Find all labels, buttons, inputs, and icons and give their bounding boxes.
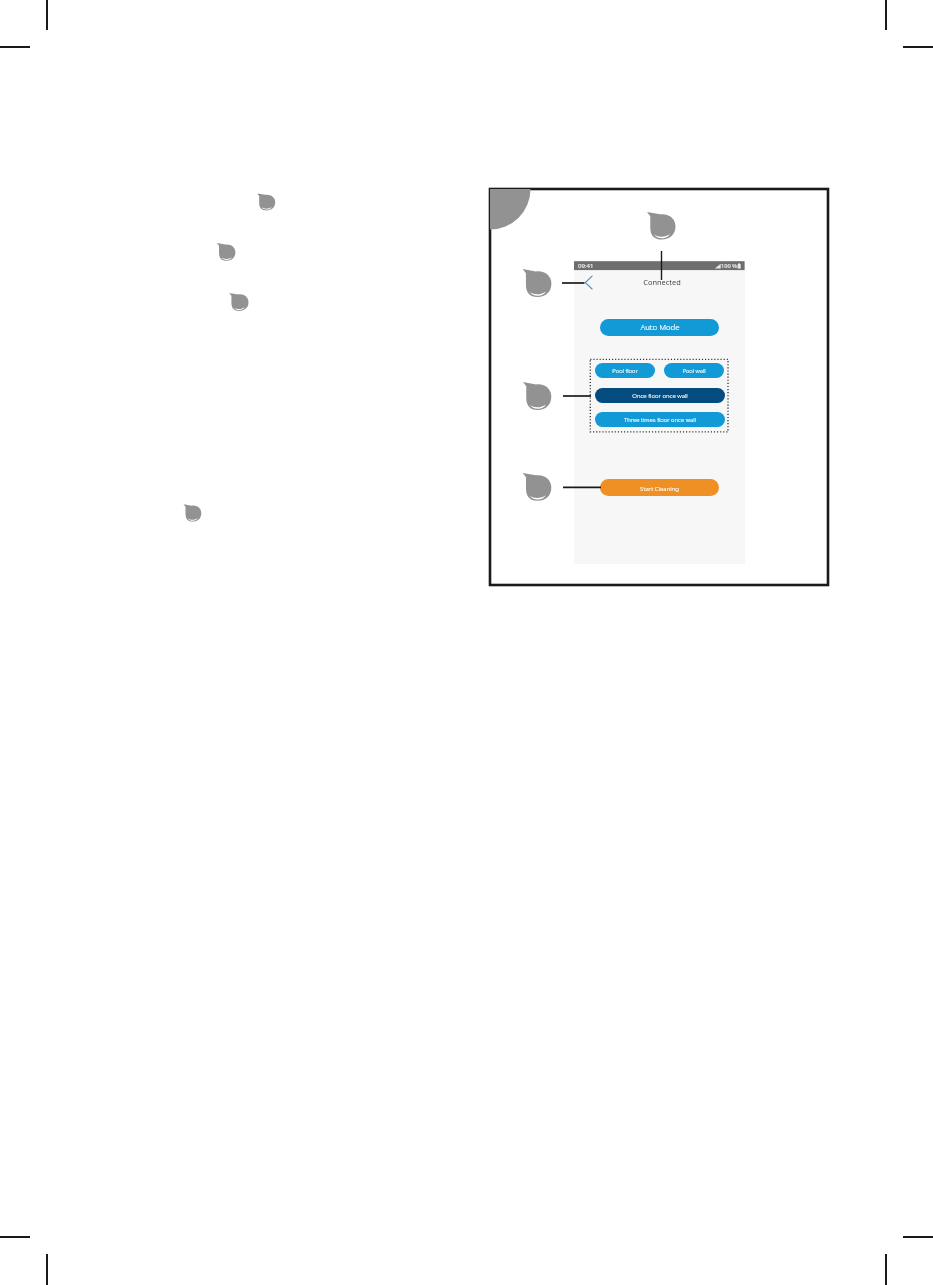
button[interactable]: Pool wall [664, 363, 724, 378]
staticText: 09:41 [578, 262, 594, 270]
staticText: Start Cleaning [640, 484, 679, 492]
button[interactable]: Pool floor [595, 363, 655, 378]
button[interactable]: Back [580, 275, 596, 291]
button[interactable]: Start Cleaning [600, 479, 719, 496]
button[interactable]: Auto Mode [600, 319, 719, 336]
staticText: Pool floor [612, 367, 638, 375]
button[interactable]: Once floor once wall [595, 388, 725, 403]
staticText: Pool wall [682, 367, 706, 375]
staticText: 100 % [721, 262, 737, 270]
staticText: Once floor once wall [632, 392, 688, 400]
staticText: Three times floor once wall [624, 416, 696, 424]
button[interactable]: Three times floor once wall [595, 412, 725, 427]
staticText: Connected [643, 277, 681, 287]
staticText: Auto Mode [640, 322, 680, 333]
